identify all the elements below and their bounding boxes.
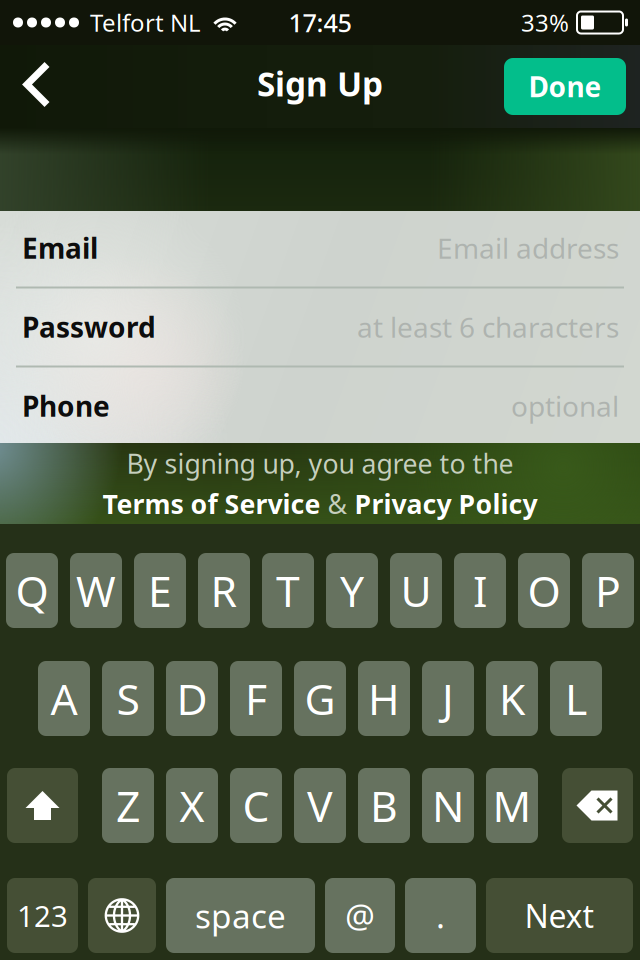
- button[interactable]: X: [166, 768, 218, 843]
- staticText: Phone: [22, 387, 110, 425]
- staticText: E: [148, 562, 172, 619]
- staticText: Privacy Policy: [354, 486, 537, 521]
- staticText: Sign Up: [257, 61, 383, 106]
- staticText: M: [492, 777, 531, 834]
- staticText: Q: [15, 562, 48, 619]
- button[interactable]: J: [422, 661, 474, 736]
- button[interactable]: F: [230, 661, 282, 736]
- staticText: H: [368, 670, 400, 727]
- staticText: C: [242, 777, 269, 834]
- button[interactable]: B: [358, 768, 410, 843]
- staticText: D: [176, 670, 207, 727]
- staticText: Telfort NL: [90, 7, 201, 38]
- staticText: X: [179, 777, 204, 834]
- staticText: N: [432, 777, 464, 834]
- staticText: Email address: [437, 229, 619, 267]
- staticText: I: [473, 562, 487, 619]
- staticText: Terms of Service: [102, 486, 320, 521]
- button[interactable]: K: [486, 661, 538, 736]
- staticText: Next: [524, 894, 594, 937]
- button[interactable]: O: [518, 553, 570, 628]
- button[interactable]: Done: [504, 58, 626, 115]
- button[interactable]: Z: [102, 768, 154, 843]
- button[interactable]: E: [134, 553, 186, 628]
- staticText: T: [276, 562, 300, 619]
- button[interactable]: U: [390, 553, 442, 628]
- button[interactable]: Phone: [0, 367, 640, 444]
- button[interactable]: Email: [0, 209, 640, 286]
- staticText: optional: [511, 387, 619, 425]
- staticText: U: [400, 562, 431, 619]
- staticText: By signing up, you agree to the: [126, 446, 513, 481]
- button[interactable]: Q: [6, 553, 58, 628]
- staticText: W: [76, 562, 116, 619]
- button[interactable]: A: [38, 661, 90, 736]
- staticText: space: [195, 893, 286, 938]
- staticText: P: [595, 562, 621, 619]
- button[interactable]: N: [422, 768, 474, 843]
- staticText: Password: [22, 308, 156, 346]
- button[interactable]: W: [70, 553, 122, 628]
- staticText: Email: [22, 229, 98, 267]
- staticText: @: [345, 893, 375, 938]
- button[interactable]: .: [405, 878, 476, 953]
- staticText: Z: [116, 777, 140, 834]
- staticText: R: [210, 562, 237, 619]
- button[interactable]: V: [294, 768, 346, 843]
- button[interactable]: R: [198, 553, 250, 628]
- button[interactable]: Delete: [562, 768, 633, 843]
- staticText: S: [116, 670, 139, 727]
- staticText: Y: [340, 562, 364, 619]
- staticText: Done: [528, 68, 601, 105]
- staticText: K: [499, 670, 525, 727]
- staticText: F: [245, 670, 267, 727]
- button[interactable]: @: [325, 878, 395, 953]
- staticText: 123: [17, 896, 68, 935]
- staticText: &: [320, 486, 354, 521]
- button[interactable]: Shift: [7, 768, 78, 843]
- button[interactable]: C: [230, 768, 282, 843]
- button[interactable]: Next: [486, 878, 633, 953]
- button[interactable]: P: [582, 553, 634, 628]
- button[interactable]: Password: [0, 288, 640, 365]
- staticText: A: [50, 670, 77, 727]
- button[interactable]: M: [486, 768, 538, 843]
- button[interactable]: Next keyboard: [88, 878, 156, 953]
- staticText: B: [370, 777, 398, 834]
- button[interactable]: Back: [0, 45, 58, 128]
- staticText: G: [304, 670, 335, 727]
- button[interactable]: T: [262, 553, 314, 628]
- staticText: at least 6 characters: [357, 308, 619, 346]
- button[interactable]: I: [454, 553, 506, 628]
- staticText: L: [565, 670, 587, 727]
- button[interactable]: D: [166, 661, 218, 736]
- staticText: .: [436, 893, 445, 938]
- button[interactable]: space: [166, 878, 315, 953]
- button[interactable]: G: [294, 661, 346, 736]
- staticText: O: [527, 562, 560, 619]
- button[interactable]: S: [102, 661, 154, 736]
- button[interactable]: L: [550, 661, 602, 736]
- button[interactable]: 123: [7, 878, 78, 953]
- button[interactable]: Y: [326, 553, 378, 628]
- button[interactable]: H: [358, 661, 410, 736]
- staticText: V: [307, 777, 333, 834]
- staticText: 33%: [521, 7, 569, 38]
- staticText: 17:45: [288, 6, 351, 39]
- staticText: J: [442, 670, 454, 727]
